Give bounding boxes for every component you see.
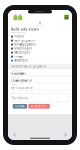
button[interactable]: mijn account [36,20,44,28]
staticText: Profiel [14,35,24,38]
button[interactable]: Instellingen [8,47,72,51]
staticText: Instellingen [14,47,32,50]
staticText: verwijderen [31,104,48,108]
staticText: Notitie [11,91,14,93]
staticText: 06 1234 5678 [11,86,33,89]
staticText: Overzicht van je gegevens [11,65,46,68]
staticText: opslaan [15,104,25,108]
staticText: Telefoon [11,84,17,86]
button[interactable]: Betaalgegevens [8,43,72,47]
button[interactable]: opslaan [13,104,27,109]
staticText: Mijn gegevens [14,39,34,42]
button[interactable]: Meldingen [8,51,72,55]
button[interactable]: Back [13,133,16,137]
staticText: Tessa Bakker [11,72,26,75]
staticText: Betaalgegevens [14,43,35,46]
button[interactable]: Mijn gegevens [8,39,72,43]
button[interactable]: Forward [64,133,67,137]
staticText: Kies een onderdeel [11,32,25,33]
staticText: Snelle actie kiezen [11,28,39,31]
button[interactable]: Privacy [8,55,72,59]
button[interactable]: Afmelden [8,59,72,63]
staticText: Naam en adres [11,70,22,72]
button[interactable]: Menu [64,15,69,20]
staticText: mijn account [36,24,44,26]
staticText: t.bakker@mail.nl [11,79,32,82]
button[interactable]: Profiel [8,35,72,39]
staticText: Afmelden [14,59,28,62]
staticText: Privacy [14,55,22,58]
button[interactable]: verwijderen [28,104,50,109]
staticText: E-mailadres [11,77,19,79]
staticText: Meldingen [14,51,30,54]
staticText: Toelichting [12,96,28,100]
